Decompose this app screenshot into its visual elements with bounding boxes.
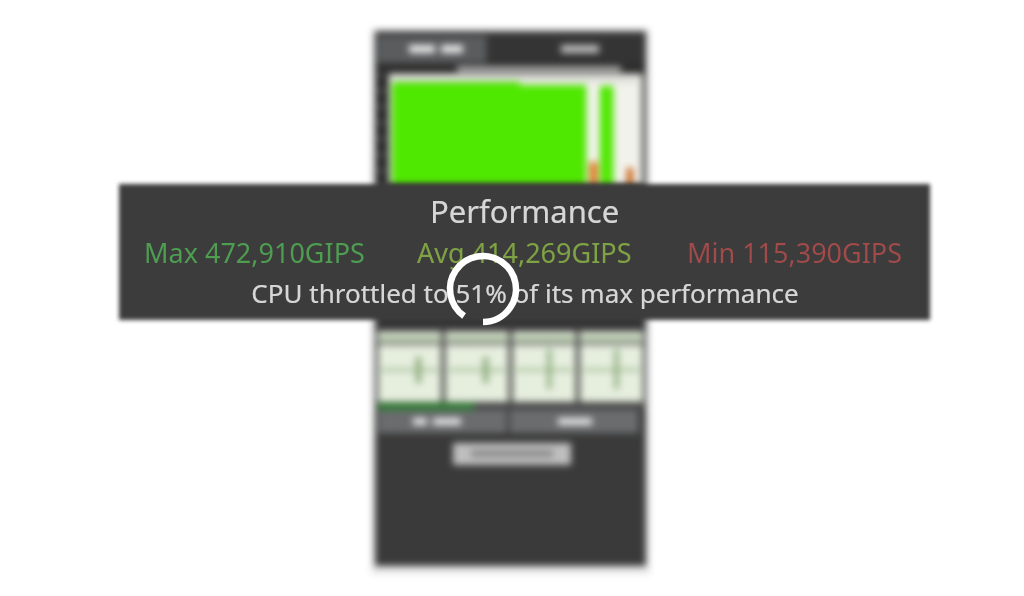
staticText: Avg 414,269GIPS [417, 234, 632, 271]
staticText: CPU throttled to 51% of its max performa… [251, 275, 799, 310]
button[interactable]: Performance [119, 184, 930, 320]
staticText: Max 472,910GIPS [144, 234, 365, 271]
staticText: Min 115,390GIPS [687, 234, 903, 271]
staticText: Performance [430, 190, 620, 232]
other: Touch indicator [443, 249, 523, 329]
